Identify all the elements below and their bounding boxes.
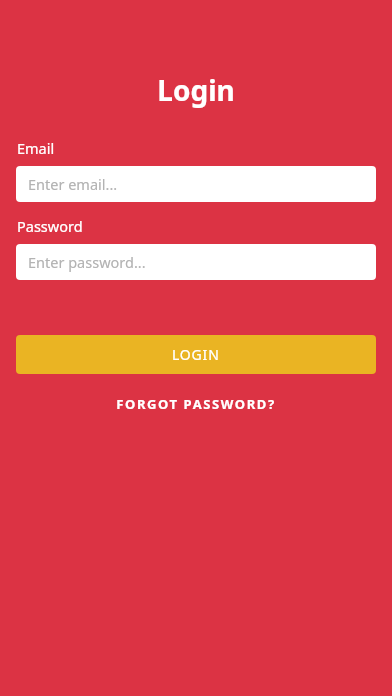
staticText: Email	[17, 138, 55, 158]
staticText: Enter email...	[28, 174, 118, 194]
staticText: FORGOT PASSWORD?	[116, 395, 276, 413]
button[interactable]: FORGOT PASSWORD?	[0, 391, 392, 417]
button[interactable]: Enter password...	[16, 244, 376, 280]
staticText: LOGIN	[172, 345, 220, 364]
staticText: Enter password...	[28, 252, 146, 272]
button[interactable]: LOGIN	[16, 335, 376, 374]
staticText: Login	[0, 71, 392, 109]
staticText: Password	[17, 216, 83, 236]
button[interactable]: Enter email...	[16, 166, 376, 202]
